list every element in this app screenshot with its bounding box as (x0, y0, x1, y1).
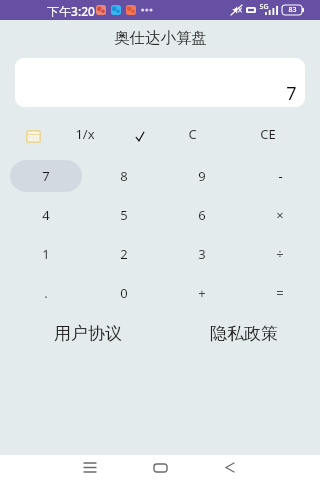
button[interactable]: 7 (10, 160, 82, 192)
staticText: 6 (198, 206, 206, 224)
button[interactable]: = (244, 277, 316, 309)
button[interactable]: 5 (88, 199, 160, 231)
button[interactable]: 3 (166, 238, 238, 270)
button[interactable]: C (170, 120, 214, 148)
staticText: + (198, 284, 206, 302)
staticText: 83 (288, 5, 297, 15)
button[interactable]: 0 (88, 277, 160, 309)
button[interactable]: Recents (68, 455, 112, 480)
staticText: 9 (198, 167, 206, 185)
button[interactable]: Home (138, 455, 182, 480)
button[interactable]: × (244, 199, 316, 231)
button[interactable]: - (244, 160, 316, 192)
staticText: 用户协议 (54, 323, 122, 344)
staticText: 7 (42, 167, 50, 185)
button[interactable]: 1 (10, 238, 82, 270)
button[interactable]: 6 (166, 199, 238, 231)
staticText: 5G (259, 2, 269, 12)
staticText: 隐私政策 (210, 323, 278, 344)
staticText: 7 (286, 81, 297, 106)
button[interactable]: 1/x (63, 120, 107, 148)
button[interactable]: 隐私政策 (203, 321, 285, 345)
button[interactable]: 8 (88, 160, 160, 192)
staticText: 1 (42, 245, 50, 263)
staticText: ÷ (276, 245, 284, 263)
button[interactable]: Square root (118, 122, 162, 150)
staticText: CE (260, 125, 276, 143)
button[interactable]: . (10, 277, 82, 309)
button[interactable]: CE (246, 120, 290, 148)
staticText: 3 (198, 245, 206, 263)
button[interactable]: 用户协议 (47, 321, 129, 345)
staticText: 奥仕达小算盘 (114, 28, 207, 48)
button[interactable]: + (166, 277, 238, 309)
button[interactable]: 7 (15, 58, 305, 107)
staticText: = (276, 284, 284, 302)
staticText: 下午3:20 (47, 3, 95, 17)
staticText: 0 (120, 284, 128, 302)
staticText: . (44, 284, 48, 302)
staticText: 8 (120, 167, 128, 185)
button[interactable]: Back (208, 455, 252, 480)
button[interactable]: Calculator (22, 125, 44, 147)
staticText: × (276, 206, 284, 224)
staticText: 2 (120, 245, 128, 263)
button[interactable]: ÷ (244, 238, 316, 270)
staticText: 1/x (75, 125, 95, 143)
staticText: C (188, 125, 197, 143)
button[interactable]: 2 (88, 238, 160, 270)
staticText: 4 (42, 206, 50, 224)
button[interactable]: 9 (166, 160, 238, 192)
staticText: 5 (120, 206, 128, 224)
button[interactable]: 4 (10, 199, 82, 231)
staticText: - (278, 167, 283, 185)
